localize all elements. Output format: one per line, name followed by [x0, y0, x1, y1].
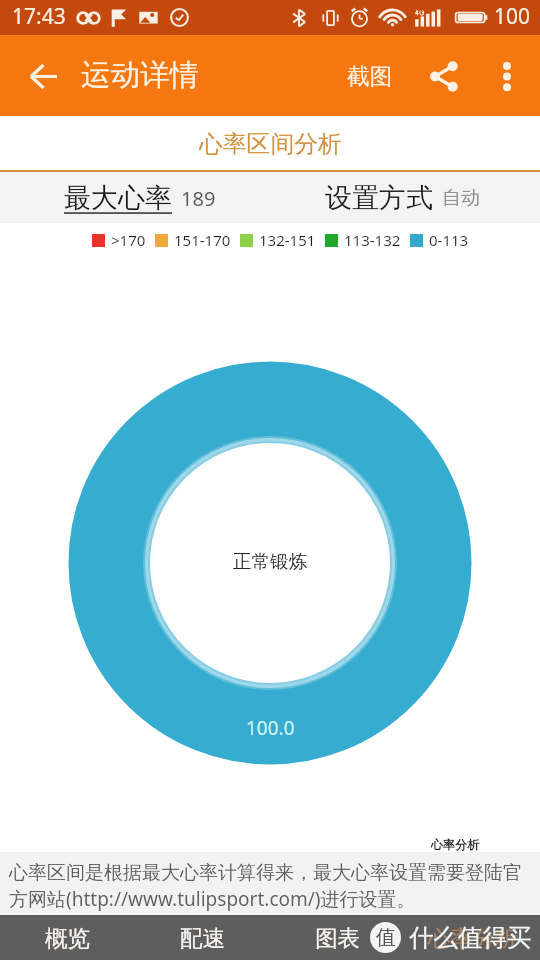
staticText: 17:43 [12, 2, 66, 31]
staticText: 值 [376, 925, 396, 950]
staticText: 什么值得买 [409, 922, 532, 953]
button[interactable]: 配速 [135, 915, 270, 960]
staticText: 151-170 [174, 230, 231, 250]
button[interactable]: 图表 [270, 915, 405, 960]
button[interactable]: 心率分析 [405, 915, 540, 960]
button[interactable]: More options [481, 50, 533, 102]
button[interactable]: Back [17, 50, 69, 102]
staticText: 正常锻炼 [233, 550, 307, 573]
button[interactable]: 最大心率 [64, 181, 216, 215]
staticText: 132-151 [259, 230, 316, 250]
button[interactable]: 设置方式 [325, 181, 480, 215]
staticText: 最大心率 [64, 181, 172, 215]
staticText: 图表 [315, 924, 360, 952]
staticText: 100.0 [246, 715, 295, 741]
staticText: >170 [111, 230, 146, 250]
staticText: 心率分析 [431, 837, 479, 852]
staticText: 心率分析 [428, 924, 518, 952]
staticText: 运动详情 [81, 57, 199, 94]
staticText: 配速 [180, 924, 225, 952]
staticText: 心率区间是根据最大心率计算得来，最大心率设置需要登陆官方网站(http://ww… [9, 861, 531, 911]
staticText: 配速 [180, 924, 225, 952]
staticText: 图表 [315, 924, 360, 952]
staticText: 0-113 [429, 230, 469, 250]
button[interactable]: Share [418, 50, 470, 102]
staticText: 100 [494, 2, 531, 31]
staticText: 概览 [45, 924, 90, 952]
staticText: 113-132 [344, 230, 401, 250]
button[interactable]: 截图 [337, 35, 401, 116]
staticText: 心率区间分析 [199, 129, 342, 159]
staticText: 189 [181, 185, 216, 212]
staticText: 设置方式 [325, 181, 433, 215]
button[interactable]: 概览 [0, 915, 135, 960]
staticText: 自动 [442, 186, 480, 210]
staticText: 截图 [347, 62, 392, 90]
staticText: 概览 [45, 924, 90, 952]
